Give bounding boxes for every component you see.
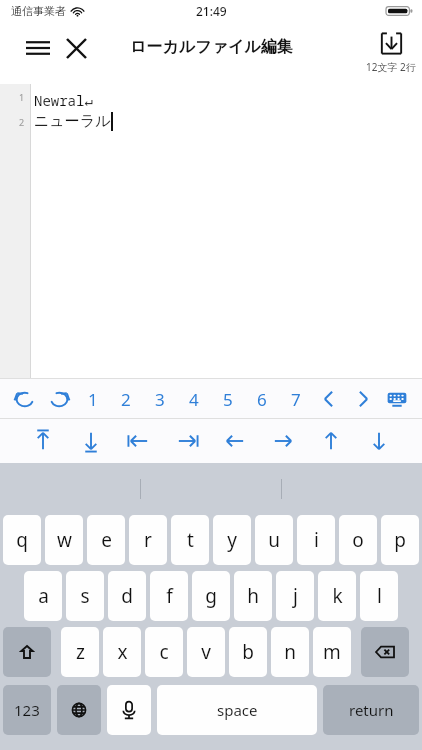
button[interactable]: x xyxy=(103,627,141,677)
button[interactable]: l xyxy=(360,571,398,621)
staticText: m xyxy=(323,639,341,665)
button[interactable]: e xyxy=(87,515,125,565)
button[interactable]: Hide keyboard xyxy=(382,382,412,416)
button[interactable]: Menu xyxy=(20,30,56,66)
button[interactable]: m xyxy=(313,627,351,677)
button[interactable]: 123 xyxy=(3,685,51,735)
button[interactable]: 1 xyxy=(78,382,108,416)
button[interactable]: d xyxy=(108,571,146,621)
button[interactable]: Switch keyboard xyxy=(57,685,101,735)
staticText: ローカルファイル編集 xyxy=(130,37,293,57)
button[interactable]: Bottom xyxy=(74,421,108,461)
button[interactable]: Up xyxy=(314,421,348,461)
button[interactable]: Close xyxy=(58,30,94,66)
button[interactable]: Dictate xyxy=(107,685,151,735)
staticText: v xyxy=(201,639,211,665)
button[interactable]: 2 xyxy=(111,382,141,416)
staticText: c xyxy=(159,639,169,665)
button[interactable]: Top xyxy=(26,421,60,461)
button[interactable]: c xyxy=(145,627,183,677)
button[interactable]: Line start xyxy=(122,421,156,461)
button[interactable] xyxy=(0,84,422,378)
button[interactable]: o xyxy=(339,515,377,565)
staticText: s xyxy=(80,583,90,609)
button[interactable]: a xyxy=(24,571,62,621)
button[interactable]: Next xyxy=(348,382,378,416)
button[interactable]: s xyxy=(66,571,104,621)
button[interactable]: f xyxy=(150,571,188,621)
button[interactable]: Save xyxy=(371,26,411,60)
staticText: space xyxy=(217,700,258,720)
staticText: t xyxy=(187,527,194,553)
button[interactable]: Line end xyxy=(170,421,204,461)
button[interactable]: j xyxy=(276,571,314,621)
button[interactable]: k xyxy=(318,571,356,621)
button[interactable]: y xyxy=(213,515,251,565)
button[interactable]: Previous xyxy=(314,382,344,416)
staticText: g xyxy=(205,583,217,609)
staticText: j xyxy=(293,583,298,609)
button[interactable]: r xyxy=(129,515,167,565)
staticText: 1 xyxy=(88,388,98,411)
button[interactable]: p xyxy=(381,515,419,565)
button[interactable]: w xyxy=(45,515,83,565)
staticText: d xyxy=(121,583,133,609)
button[interactable]: return xyxy=(323,685,419,735)
staticText: q xyxy=(16,527,28,553)
staticText: 123 xyxy=(14,700,40,720)
button[interactable]: h xyxy=(234,571,272,621)
button[interactable]: Right xyxy=(266,421,300,461)
staticText: u xyxy=(268,527,280,553)
staticText: 7 xyxy=(291,388,301,411)
staticText: o xyxy=(352,527,364,553)
staticText: w xyxy=(57,527,72,553)
button[interactable]: i xyxy=(297,515,335,565)
staticText: f xyxy=(166,583,173,609)
staticText: 12文字 2行 xyxy=(366,60,416,74)
button[interactable]: u xyxy=(255,515,293,565)
staticText: r xyxy=(144,527,152,553)
staticText: b xyxy=(242,639,254,665)
staticText: 3 xyxy=(155,388,165,411)
staticText: 21:49 xyxy=(196,3,227,19)
button[interactable]: Redo xyxy=(44,382,74,416)
button[interactable]: space xyxy=(157,685,317,735)
staticText: i xyxy=(314,527,319,553)
staticText: y xyxy=(227,527,237,553)
button[interactable]: Left xyxy=(218,421,252,461)
staticText: ニューラル xyxy=(34,112,111,131)
staticText: h xyxy=(247,583,259,609)
staticText: 5 xyxy=(223,388,233,411)
button[interactable]: b xyxy=(229,627,267,677)
staticText: p xyxy=(394,527,406,553)
button[interactable]: 5 xyxy=(213,382,243,416)
button[interactable]: z xyxy=(61,627,99,677)
button[interactable]: t xyxy=(171,515,209,565)
staticText: z xyxy=(76,639,85,665)
button[interactable]: 4 xyxy=(179,382,209,416)
staticText: k xyxy=(332,583,343,609)
staticText: x xyxy=(117,639,128,665)
staticText: 2 xyxy=(121,388,131,411)
button[interactable]: v xyxy=(187,627,225,677)
staticText: 6 xyxy=(257,388,267,411)
staticText: 通信事業者 xyxy=(11,4,66,18)
button[interactable]: Undo xyxy=(10,382,40,416)
button[interactable]: 7 xyxy=(281,382,311,416)
staticText: 1 xyxy=(19,91,25,103)
button[interactable]: g xyxy=(192,571,230,621)
button[interactable]: 6 xyxy=(247,382,277,416)
button[interactable]: Backspace xyxy=(361,627,409,677)
button[interactable]: n xyxy=(271,627,309,677)
staticText: n xyxy=(284,639,296,665)
staticText: e xyxy=(101,527,112,553)
staticText: 2 xyxy=(19,116,25,128)
staticText: a xyxy=(38,583,49,609)
staticText: return xyxy=(349,700,394,720)
button[interactable]: 3 xyxy=(145,382,175,416)
button[interactable]: Shift xyxy=(3,627,51,677)
staticText: Newral↵ xyxy=(34,91,93,110)
staticText: 4 xyxy=(189,388,199,411)
button[interactable]: Down xyxy=(362,421,396,461)
button[interactable]: q xyxy=(3,515,41,565)
